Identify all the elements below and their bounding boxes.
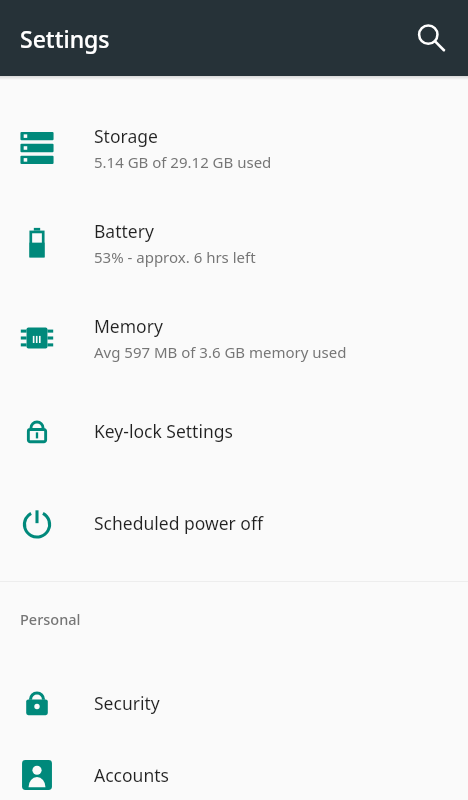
button[interactable]: Key-lock Settings [0, 385, 468, 477]
staticText: Storage [94, 124, 158, 148]
button[interactable]: Accounts [0, 750, 468, 800]
staticText: Battery [94, 219, 154, 243]
staticText: 5.14 GB of 29.12 GB used [94, 152, 272, 172]
button[interactable]: Storage [0, 100, 468, 195]
staticText: Memory [94, 314, 163, 338]
button[interactable]: Security [0, 656, 468, 750]
staticText: Scheduled power off [94, 511, 263, 535]
staticText: Settings [20, 23, 110, 54]
button[interactable]: Scheduled power off [0, 477, 468, 569]
staticText: Personal [20, 609, 81, 629]
button[interactable]: Search [404, 11, 458, 65]
staticText: Accounts [94, 763, 169, 787]
staticText: Key-lock Settings [94, 419, 233, 443]
staticText: 53% - approx. 6 hrs left [94, 247, 256, 267]
staticText: Avg 597 MB of 3.6 GB memory used [94, 342, 347, 362]
button[interactable]: Memory [0, 290, 468, 385]
button[interactable]: Battery [0, 195, 468, 290]
staticText: Security [94, 691, 160, 715]
